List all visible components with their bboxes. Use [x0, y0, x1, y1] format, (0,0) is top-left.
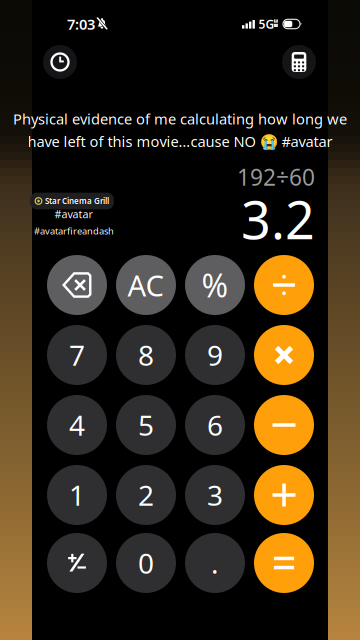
- staticText: Star Cinema Grill: [45, 196, 109, 206]
- staticText: #avatar: [54, 207, 92, 221]
- button[interactable]: Subtract: [254, 395, 314, 455]
- staticText: 6: [207, 406, 223, 444]
- staticText: 7:03: [67, 14, 95, 34]
- staticText: 7: [69, 336, 85, 374]
- button[interactable]: 3: [185, 465, 245, 525]
- staticText: %: [201, 264, 228, 306]
- staticText: 9: [207, 336, 223, 374]
- staticText: have left of this movie…cause NO 😭 #avat…: [27, 131, 332, 151]
- button[interactable]: 8: [116, 325, 176, 385]
- button[interactable]: Plus or minus: [47, 533, 107, 593]
- staticText: 5: [138, 406, 154, 444]
- staticText: 4: [69, 406, 85, 444]
- button[interactable]: 9: [185, 325, 245, 385]
- button[interactable]: %: [185, 255, 245, 315]
- staticText: 8: [138, 336, 154, 374]
- staticText: 0: [138, 544, 154, 582]
- button[interactable]: 5: [116, 395, 176, 455]
- staticText: 5G: [258, 16, 274, 32]
- staticText: Physical evidence of me calculating how …: [13, 109, 347, 128]
- button[interactable]: 4: [47, 395, 107, 455]
- staticText: 2: [138, 476, 154, 514]
- staticText: AC: [127, 265, 164, 304]
- button[interactable]: Multiply: [254, 325, 314, 385]
- button[interactable]: Add: [254, 465, 314, 525]
- button[interactable]: 6: [185, 395, 245, 455]
- button[interactable]: Star Cinema Grill location: [30, 193, 114, 209]
- button[interactable]: Scientific calculator: [282, 45, 316, 79]
- staticText: #avatarfireandash: [34, 225, 114, 237]
- staticText: .: [211, 544, 219, 582]
- button[interactable]: .: [185, 533, 245, 593]
- staticText: 3: [207, 476, 223, 514]
- button[interactable]: 2: [116, 465, 176, 525]
- staticText: 3.2: [241, 184, 315, 254]
- button[interactable]: 7: [47, 325, 107, 385]
- button[interactable]: Delete: [47, 255, 107, 315]
- button[interactable]: 0: [116, 533, 176, 593]
- button[interactable]: History: [43, 45, 77, 79]
- button[interactable]: AC: [116, 255, 176, 315]
- button[interactable]: Divide: [254, 255, 314, 315]
- staticText: 1: [69, 476, 85, 514]
- staticText: 192÷60: [237, 162, 315, 192]
- button[interactable]: Equals: [254, 533, 314, 593]
- button[interactable]: 1: [47, 465, 107, 525]
